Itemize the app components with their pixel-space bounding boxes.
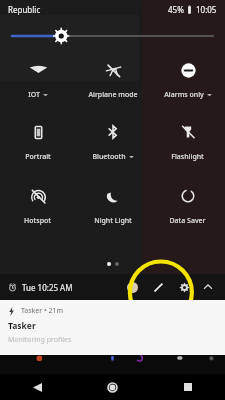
- staticText: Alarms only: [164, 90, 204, 100]
- staticText: Tue 10:25 AM: [22, 282, 73, 293]
- button[interactable]: Flashlight: [150, 115, 225, 164]
- button[interactable]: Brightness: [12, 27, 213, 45]
- staticText: Tasker • 21m: [21, 306, 64, 316]
- button[interactable]: Tue 10:25 AM: [8, 282, 73, 293]
- button[interactable]: Back: [0, 374, 75, 400]
- button[interactable]: Alarms only: [150, 53, 225, 102]
- staticText: Data Saver: [169, 216, 206, 226]
- button[interactable]: Edit tiles: [149, 278, 167, 296]
- button[interactable]: Tasker • 21m: [0, 300, 225, 355]
- button[interactable]: Home: [75, 374, 150, 400]
- button[interactable]: Data Saver: [150, 179, 225, 228]
- staticText: Night Light: [94, 216, 132, 226]
- button[interactable]: Night Light: [75, 179, 150, 228]
- staticText: Bluetooth: [92, 152, 126, 162]
- button[interactable]: Bluetooth: [75, 115, 150, 164]
- button[interactable]: Airplane mode: [75, 53, 150, 102]
- staticText: Portrait: [25, 152, 51, 162]
- staticText: IOT: [28, 90, 40, 100]
- button[interactable]: IOT: [0, 53, 75, 102]
- button[interactable]: Settings: [175, 278, 193, 296]
- button[interactable]: Hotspot: [0, 179, 75, 228]
- button[interactable]: User profile: [123, 278, 141, 296]
- staticText: 45%: [168, 4, 184, 15]
- button[interactable]: Collapse: [199, 278, 217, 296]
- button[interactable]: Portrait: [0, 115, 75, 164]
- staticText: 10:05: [196, 4, 217, 15]
- staticText: Airplane mode: [88, 90, 138, 100]
- staticText: Tasker: [8, 320, 36, 332]
- staticText: Monitoring profiles: [8, 335, 72, 345]
- button[interactable]: Recent apps: [150, 374, 225, 400]
- staticText: Flashlight: [171, 152, 204, 162]
- staticText: Republic: [8, 4, 41, 15]
- staticText: Hotspot: [24, 216, 51, 226]
